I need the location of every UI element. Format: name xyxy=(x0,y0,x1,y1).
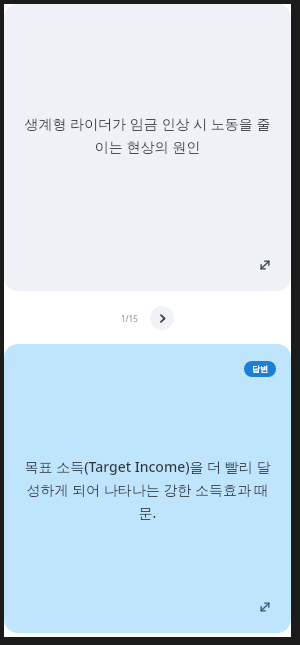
staticText: 1/15 xyxy=(121,313,138,324)
staticText: 목표 소득(Target Income)을 더 빨리 달성하게 되어 나타나는 … xyxy=(22,457,273,522)
button[interactable]: Expand xyxy=(256,256,274,274)
button[interactable]: 생계형 라이더가 임금 인상 시 노동을 줄이는 현상의 원인 xyxy=(4,4,291,291)
button[interactable]: Next xyxy=(150,306,174,330)
button[interactable]: Expand xyxy=(256,598,274,616)
staticText: 답변 xyxy=(252,364,268,374)
staticText: 생계형 라이더가 임금 인상 시 노동을 줄이는 현상의 원인 xyxy=(22,114,273,156)
button[interactable]: 답변 xyxy=(4,344,291,633)
button[interactable]: 답변 xyxy=(244,361,276,377)
